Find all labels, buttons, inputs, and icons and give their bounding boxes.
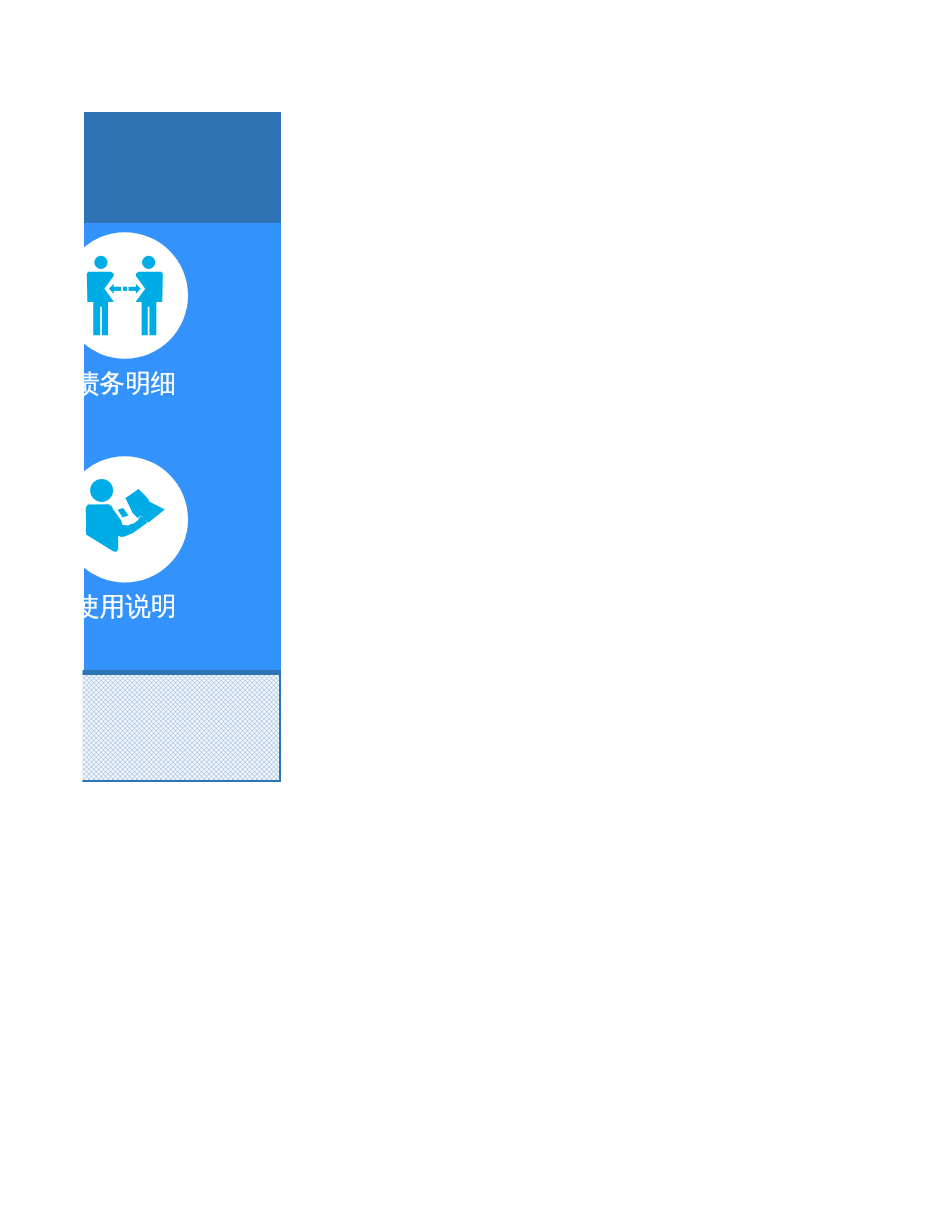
button[interactable]: 债务明细 <box>84 223 281 447</box>
staticText: 使用说明 <box>74 590 177 622</box>
staticText: 债务明细 <box>74 367 177 399</box>
button[interactable]: 使用说明 <box>84 447 281 670</box>
